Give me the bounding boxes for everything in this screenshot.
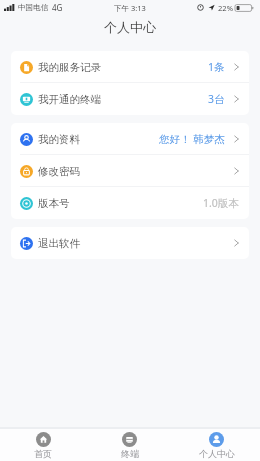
staticText: 个人中心 xyxy=(199,448,235,459)
button[interactable]: 我的服务记录 xyxy=(11,51,249,83)
staticText: 4G xyxy=(52,2,63,13)
button[interactable]: 我的资料 xyxy=(11,123,249,155)
staticText: 您好！ 韩梦杰 xyxy=(159,132,225,146)
staticText: 3台 xyxy=(208,92,225,106)
button[interactable]: 版本号 xyxy=(11,187,249,219)
staticText: 22% xyxy=(218,3,233,13)
staticText: 退出软件 xyxy=(38,237,80,250)
staticText: 1条 xyxy=(208,60,225,74)
staticText: 修改密码 xyxy=(38,165,80,178)
staticText: 我的资料 xyxy=(38,133,80,146)
staticText: 首页 xyxy=(34,448,52,459)
button[interactable]: 首页 xyxy=(0,429,86,459)
staticText: 中国电信 xyxy=(18,3,49,13)
staticText: 我的服务记录 xyxy=(38,61,101,74)
button[interactable]: 终端 xyxy=(86,429,173,459)
staticText: 个人中心 xyxy=(104,19,156,35)
button[interactable]: 退出软件 xyxy=(11,227,249,259)
button[interactable]: 个人中心 xyxy=(173,429,260,459)
staticText: 下午 3:13 xyxy=(114,3,146,13)
staticText: 版本号 xyxy=(38,197,70,210)
button[interactable]: 我开通的终端 xyxy=(11,83,249,115)
staticText: 我开通的终端 xyxy=(38,93,101,106)
button[interactable]: 修改密码 xyxy=(11,155,249,187)
staticText: 终端 xyxy=(121,448,139,459)
staticText: 1.0版本 xyxy=(203,196,239,210)
